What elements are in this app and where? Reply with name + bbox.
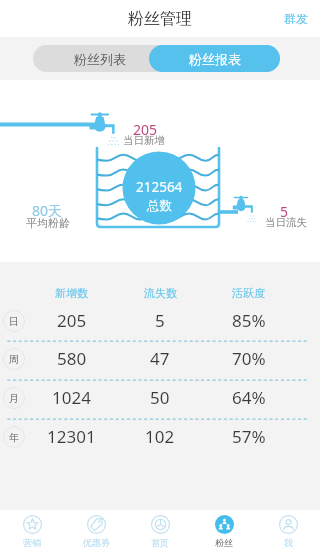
staticText: 群发 — [284, 11, 308, 26]
staticText: 月 — [9, 392, 19, 405]
button[interactable]: 首页 — [128, 510, 192, 552]
staticText: 64% — [232, 386, 266, 409]
button[interactable]: 周 — [0, 339, 320, 378]
staticText: 流失数 — [144, 286, 177, 300]
staticText: 5 — [155, 309, 165, 332]
button[interactable]: 粉丝 — [192, 510, 256, 552]
button[interactable]: 粉丝列表 — [33, 45, 166, 72]
staticText: 580 — [57, 347, 87, 370]
staticText: 205 — [57, 309, 87, 332]
staticText: 85% — [232, 309, 266, 332]
staticText: 102 — [145, 425, 175, 448]
staticText: 1024 — [52, 386, 91, 409]
staticText: 平均粉龄 — [26, 216, 70, 230]
button[interactable]: 群发 — [272, 3, 320, 34]
staticText: 粉丝 — [215, 537, 233, 548]
staticText: 新增数 — [55, 286, 88, 300]
staticText: 粉丝列表 — [74, 51, 126, 67]
staticText: 我 — [284, 537, 293, 548]
staticText: 70% — [232, 347, 266, 370]
button[interactable]: 月 — [0, 378, 320, 417]
staticText: 粉丝管理 — [128, 9, 192, 29]
staticText: 首页 — [151, 537, 169, 548]
staticText: 50 — [150, 386, 170, 409]
staticText: 活跃度 — [232, 286, 265, 300]
button[interactable]: 优惠券 — [64, 510, 128, 552]
staticText: 5 — [280, 202, 289, 221]
button[interactable]: 粉丝报表 — [149, 45, 280, 72]
button[interactable]: 日 — [0, 301, 320, 340]
staticText: 12301 — [47, 425, 96, 448]
staticText: 日 — [9, 315, 19, 328]
button[interactable]: 营销 — [0, 510, 64, 552]
staticText: 总数 — [147, 198, 172, 214]
staticText: 营销 — [23, 537, 41, 548]
staticText: 57% — [232, 425, 266, 448]
button[interactable]: 年 — [0, 417, 320, 456]
staticText: 优惠券 — [83, 537, 110, 548]
staticText: 212564 — [136, 178, 183, 196]
button[interactable]: 我 — [256, 510, 320, 552]
staticText: 80天 — [32, 201, 63, 220]
staticText: 当日流失 — [265, 216, 307, 229]
staticText: 当日新增 — [123, 134, 165, 147]
staticText: 周 — [9, 353, 19, 366]
staticText: 年 — [9, 431, 19, 444]
staticText: 47 — [150, 347, 170, 370]
staticText: 205 — [133, 120, 158, 139]
staticText: 粉丝报表 — [189, 51, 241, 67]
